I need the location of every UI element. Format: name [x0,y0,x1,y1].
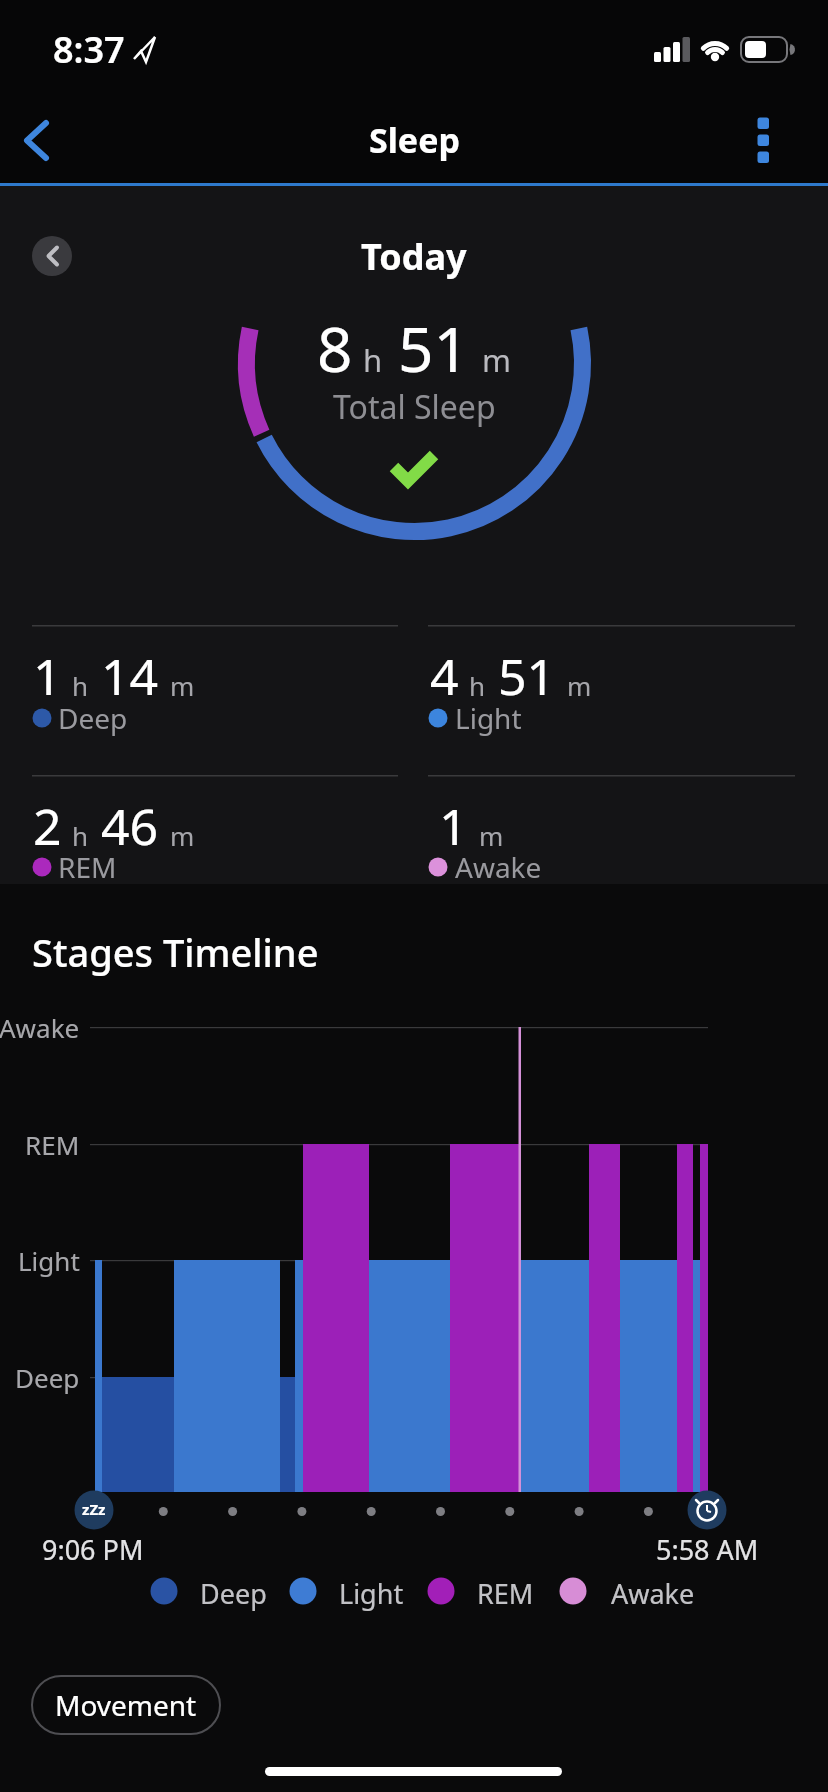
staticText: Sleep [369,117,460,163]
staticText: REM [58,848,117,886]
staticText: Deep [58,699,128,737]
staticText: zZz [82,1499,106,1519]
staticText: Total Sleep [333,385,496,429]
button[interactable] [0,100,80,180]
staticText: h [72,818,89,853]
staticText: 51 [398,306,469,390]
staticText: Deep [200,1575,267,1612]
staticText: m [567,668,592,703]
staticText: Awake [611,1575,695,1612]
staticText: 5:58 AM [656,1531,759,1568]
staticText: 51 [498,642,556,710]
staticText: 1 [33,642,62,710]
staticText: 9:06 PM [42,1531,144,1568]
staticText: Awake [455,848,542,886]
button[interactable] [24,228,80,284]
staticText: m [479,818,504,853]
button[interactable]: Movement [32,1676,220,1734]
staticText: 14 [101,642,159,710]
staticText: Deep [15,1360,80,1395]
staticText: 4 [430,642,459,710]
staticText: REM [25,1127,80,1162]
button[interactable] [740,100,828,180]
staticText: Light [339,1575,404,1612]
staticText: 8 [317,306,353,390]
staticText: Movement [55,1686,197,1724]
staticText: m [170,818,195,853]
staticText: h [363,339,383,381]
staticText: 2 [33,792,62,860]
staticText: 1 [439,792,468,860]
staticText: Light [18,1243,80,1278]
staticText: Awake [0,1010,80,1045]
staticText: 46 [101,792,159,860]
staticText: REM [477,1575,534,1612]
staticText: Stages Timeline [32,926,319,978]
staticText: m [482,339,511,381]
staticText: h [469,668,486,703]
staticText: 8:37 [53,25,125,74]
staticText: h [72,668,89,703]
staticText: Today [361,232,467,281]
staticText: Light [455,699,522,737]
staticText: m [170,668,195,703]
